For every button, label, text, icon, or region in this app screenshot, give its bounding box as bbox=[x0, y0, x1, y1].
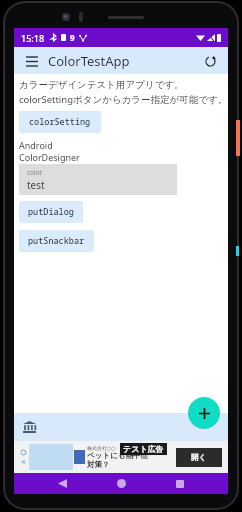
button[interactable]: Account balance bbox=[19, 417, 39, 437]
staticText: colorSetting bbox=[29, 116, 91, 128]
staticText: Android bbox=[19, 139, 53, 151]
staticText: カラーデザインテスト用アプリです。 bbox=[19, 79, 184, 91]
staticText: ペットにも熱中症 bbox=[87, 451, 148, 460]
staticText: colorSettingボタンからカラー指定が可能です。 bbox=[19, 93, 228, 106]
button[interactable]: Back bbox=[51, 473, 73, 494]
button[interactable]: Add bbox=[188, 397, 220, 429]
staticText: 9 bbox=[70, 32, 75, 43]
staticText: 15:18 bbox=[21, 32, 45, 44]
staticText: 対策？ bbox=[87, 460, 110, 469]
staticText: 開く bbox=[191, 453, 207, 462]
staticText: ✕ bbox=[21, 458, 27, 465]
button[interactable]: Refresh bbox=[200, 51, 220, 71]
staticText: 株式会社○○ bbox=[87, 445, 116, 451]
staticText: test bbox=[27, 178, 45, 192]
staticText: ColorDesigner bbox=[19, 151, 80, 163]
button[interactable]: Recents bbox=[169, 473, 191, 494]
button[interactable]: Menu bbox=[22, 51, 42, 71]
button[interactable]: putDialog bbox=[19, 201, 83, 223]
button[interactable]: colorSetting bbox=[19, 111, 101, 133]
staticText: color bbox=[27, 168, 43, 177]
staticText: テスト広告 bbox=[123, 444, 164, 454]
staticText: putDialog bbox=[28, 206, 74, 218]
button[interactable]: putSnackbar bbox=[19, 230, 94, 252]
button[interactable]: Home bbox=[110, 473, 132, 494]
button[interactable]: 開く bbox=[176, 448, 222, 467]
staticText: putSnackbar bbox=[28, 235, 85, 247]
staticText: ColorTestApp bbox=[48, 52, 130, 70]
